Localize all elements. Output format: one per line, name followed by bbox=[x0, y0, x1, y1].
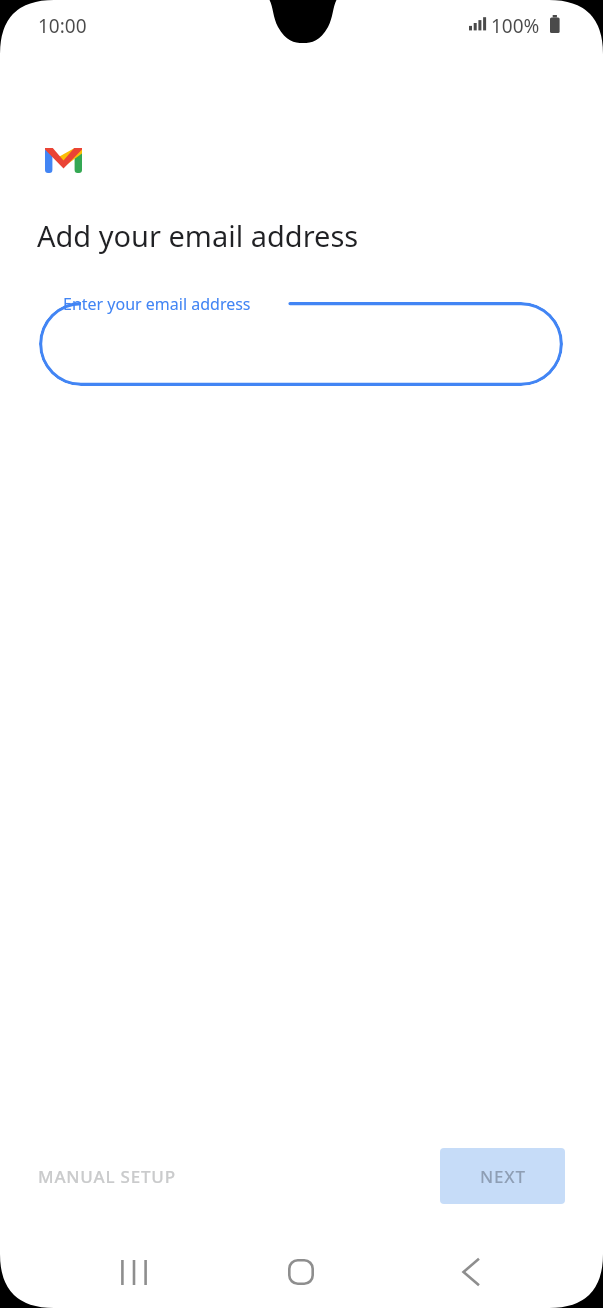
staticText: MANUAL SETUP bbox=[38, 1165, 176, 1188]
staticText: NEXT bbox=[480, 1165, 526, 1188]
staticText: Enter your email address bbox=[63, 293, 251, 315]
button[interactable]: Recent apps bbox=[94, 1239, 174, 1305]
staticText: 10:00 bbox=[38, 13, 87, 39]
button[interactable]: MANUAL SETUP bbox=[18, 1150, 220, 1202]
button[interactable]: Back bbox=[430, 1239, 510, 1305]
button[interactable]: NEXT bbox=[440, 1148, 565, 1204]
button[interactable] bbox=[39, 302, 563, 386]
staticText: 100% bbox=[491, 13, 540, 39]
button[interactable]: Home bbox=[261, 1239, 341, 1305]
staticText: Add your email address bbox=[37, 216, 359, 255]
